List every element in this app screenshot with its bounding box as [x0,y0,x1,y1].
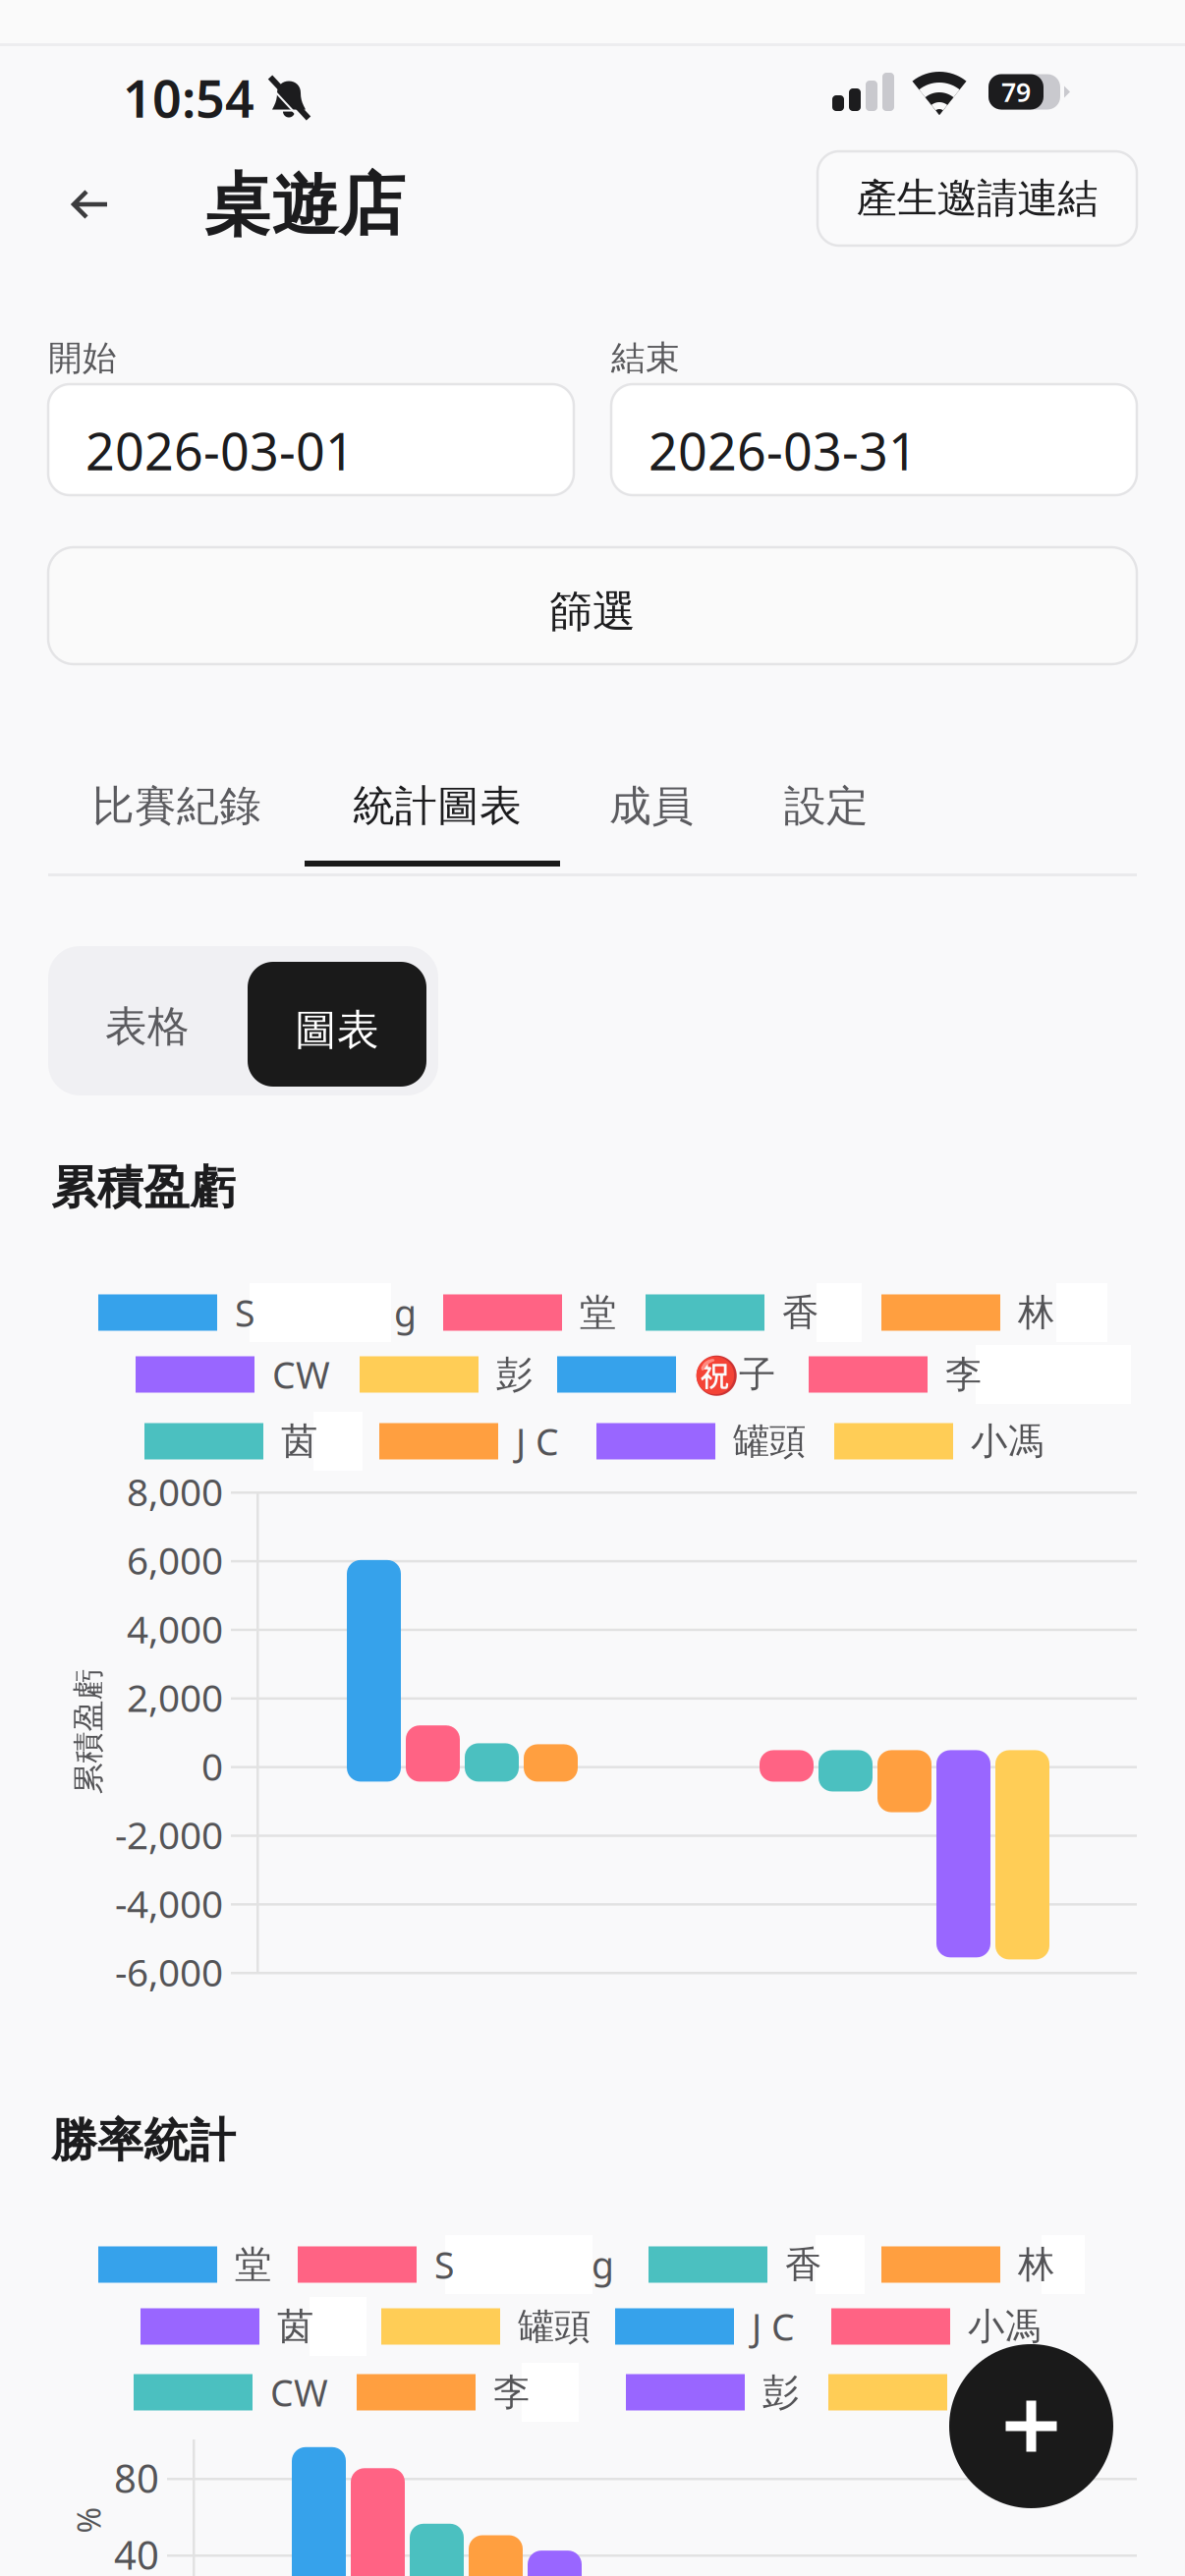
staticText: -6,000 [115,1947,223,1997]
staticText: 圖表 [295,1004,379,1056]
staticText: 40 [114,2528,159,2576]
staticText: S [235,1288,254,1337]
staticText: 李 [493,2370,530,2415]
button[interactable]: 篩選 [48,547,1137,664]
staticText: 堂 [580,1290,616,1335]
button[interactable]: 產生邀請連結 [818,151,1137,246]
staticText: S [434,2240,454,2289]
staticText: 彭 [496,1352,533,1397]
staticText: 2026-03-31 [649,417,918,484]
staticText: 比賽紀錄 [92,780,261,832]
staticText: 2026-03-01 [85,417,355,484]
staticText: 小馮 [968,2304,1041,2349]
button[interactable]: 表格 [48,946,247,1095]
staticText: 罐頭 [518,2304,591,2349]
staticText: CW [272,1350,330,1399]
button[interactable]: 2026-03-01 [48,384,574,495]
staticText: 產生邀請連結 [856,174,1098,223]
staticText: ㊗️子 [694,1352,775,1397]
button[interactable]: 比賽紀錄 [67,746,287,867]
button[interactable]: 2026-03-31 [611,384,1137,495]
staticText: 篩選 [549,585,636,638]
button[interactable]: 成員 [584,746,719,867]
staticText: 勝率統計 [51,2113,236,2169]
staticText: -4,000 [115,1878,223,1928]
staticText: 林 [1018,2242,1054,2287]
staticText: 小馮 [971,1419,1044,1464]
staticText: 累積盈虧 [51,1160,236,1216]
button[interactable]: 設定 [759,746,894,867]
staticText: 堂 [235,2242,271,2287]
staticText: 桌遊店 [204,164,405,246]
staticText: 李 [945,1352,982,1397]
staticText: 累積盈虧 [26,1712,151,1751]
staticText: J C [516,1417,559,1466]
staticText: 結束 [611,337,680,379]
staticText: 0 [201,1741,223,1791]
staticText: 成員 [609,780,694,832]
staticText: 香 [785,2242,821,2287]
staticText: 茵 [281,1419,317,1464]
staticText: 4,000 [127,1603,223,1654]
staticText: J C [752,2302,795,2351]
staticText: g [394,1288,417,1337]
button[interactable]: 新增 [949,2344,1113,2508]
staticText: 表格 [105,1001,190,1052]
staticText: 統計圖表 [353,780,522,832]
staticText: 茵 [277,2304,313,2349]
staticText: 2,000 [127,1672,223,1722]
button[interactable]: 返回 [43,150,138,258]
staticText: g [592,2240,614,2289]
staticText: 8,000 [127,1466,223,1517]
staticText: 設定 [784,780,869,832]
staticText: 彭 [762,2370,799,2415]
button[interactable]: 統計圖表 [327,746,547,867]
staticText: -2,000 [115,1809,223,1860]
staticText: 罐頭 [733,1419,806,1464]
staticText: % [75,2499,102,2541]
staticText: 林 [1018,1290,1054,1335]
staticText: 香 [782,1290,818,1335]
staticText: 6,000 [127,1535,223,1585]
staticText: 開始 [48,337,117,379]
staticText: CW [270,2368,328,2417]
staticText: 10:54 [123,64,254,132]
button[interactable]: 圖表 [248,962,426,1087]
staticText: 80 [114,2452,159,2504]
staticText: 79 [1001,74,1031,109]
